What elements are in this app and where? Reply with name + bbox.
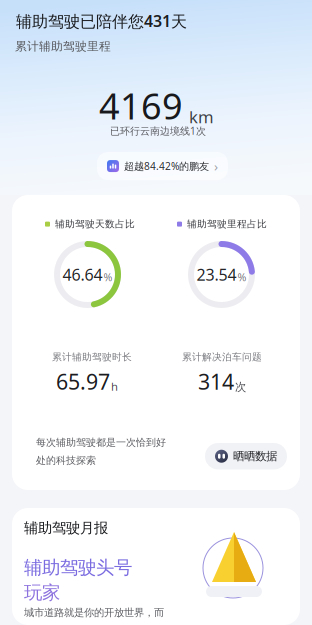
staticText: 晒晒数据 [233, 449, 277, 463]
staticText: 次 [235, 380, 246, 394]
staticText: 每次辅助驾驶都是一次恰到好 [36, 436, 166, 449]
staticText: % [237, 270, 246, 284]
staticText: h [111, 379, 118, 394]
staticText: 玩家 [24, 581, 60, 604]
staticText: km [189, 105, 214, 128]
staticText: % [103, 270, 112, 284]
staticText: 累计辅助驾驶里程 [15, 39, 111, 54]
staticText: 46.64 [62, 264, 102, 285]
staticText: 超越84.42%的鹏友 [124, 159, 209, 173]
staticText: 辅助驾驶天数占比 [55, 218, 135, 230]
staticText: 314 [198, 367, 234, 396]
staticText: 已环行云南边境线1次 [110, 124, 206, 138]
staticText: 辅助驾驶里程占比 [187, 218, 267, 230]
staticText: 65.97 [56, 367, 110, 396]
button[interactable]: 超越84.42%的鹏友 [97, 152, 228, 180]
staticText: 辅助驾驶头号 [24, 556, 132, 579]
button[interactable]: 晒晒数据 [205, 443, 287, 469]
staticText: 累计辅助驾驶时长 [52, 351, 132, 363]
staticText: 辅助驾驶月报 [24, 519, 108, 537]
staticText: 4169 [99, 81, 183, 130]
staticText: 累计解决泊车问题 [182, 351, 262, 363]
staticText: › [214, 157, 218, 175]
staticText: 处的科技探索 [36, 454, 96, 467]
staticText: 城市道路就是你的开放世界，而 [24, 606, 164, 619]
staticText: 辅助驾驶已陪伴您431天 [16, 10, 187, 32]
staticText: 23.54 [196, 264, 236, 285]
